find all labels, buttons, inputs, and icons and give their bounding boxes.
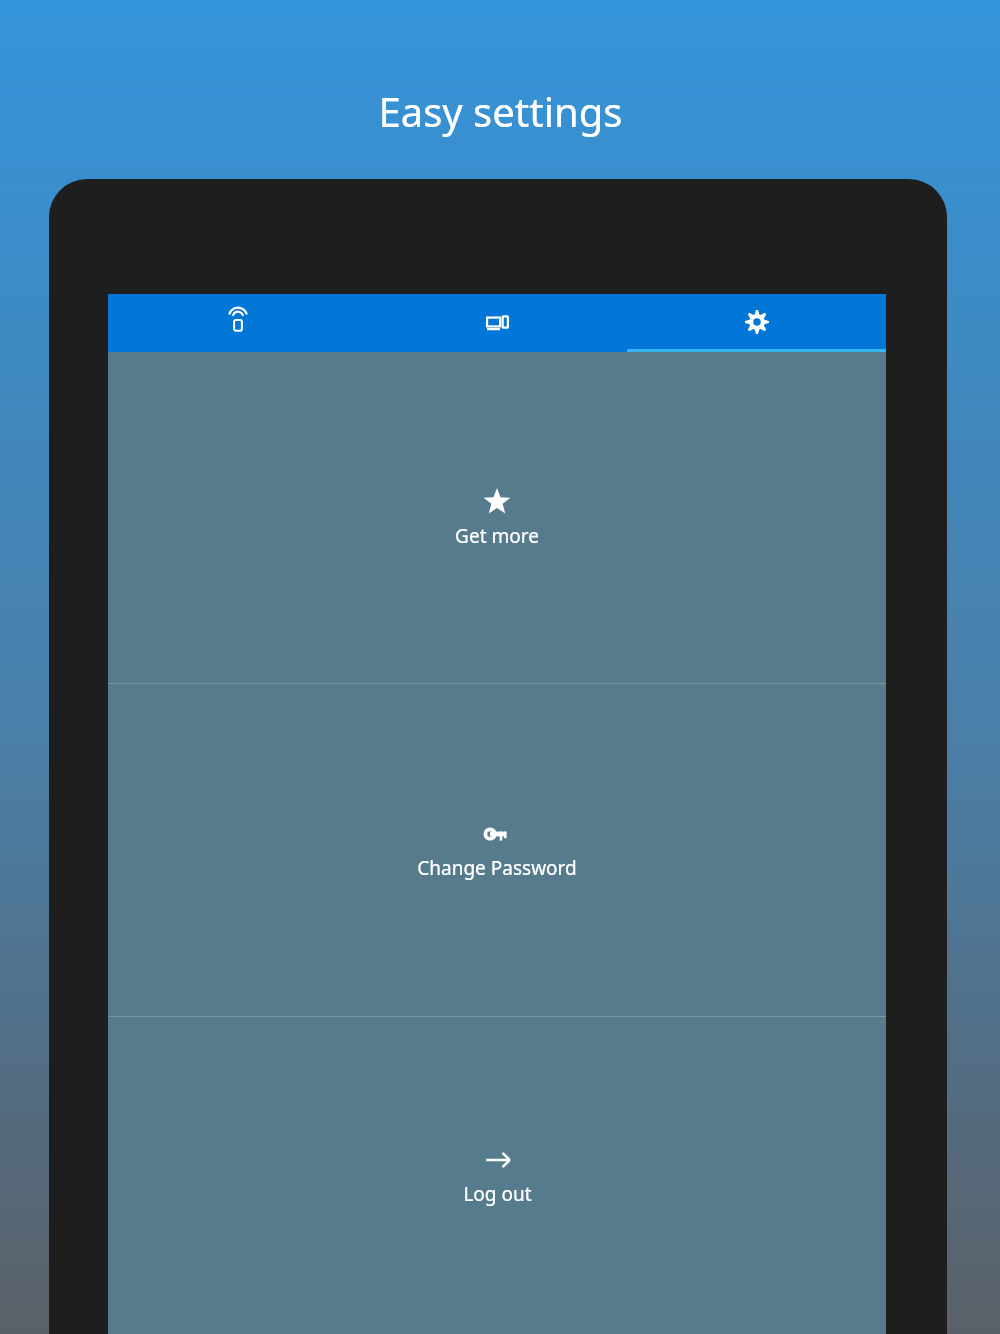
staticText: Log out [463, 1181, 532, 1207]
staticText: Easy settings [378, 84, 623, 138]
staticText: Get more [455, 523, 539, 549]
button[interactable]: Devices [368, 294, 627, 349]
button[interactable]: Get more [108, 352, 886, 683]
button[interactable]: Log out [108, 1017, 886, 1334]
staticText: Change Password [417, 855, 577, 881]
button[interactable]: Remote [108, 294, 368, 349]
button[interactable]: Change Password [108, 684, 886, 1016]
button[interactable]: Settings [627, 294, 886, 349]
